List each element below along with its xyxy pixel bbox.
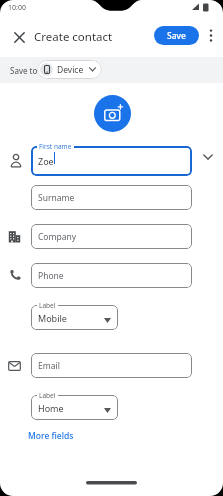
staticText: More fields — [28, 430, 74, 442]
button[interactable]: Device — [37, 60, 102, 79]
staticText: First name — [39, 142, 72, 151]
staticText: Company — [38, 231, 77, 243]
button[interactable] — [199, 148, 217, 166]
button[interactable] — [94, 95, 131, 132]
button[interactable]: Zoe — [31, 146, 192, 176]
button[interactable]: More fields — [26, 428, 76, 444]
staticText: Create contact — [34, 29, 113, 45]
staticText: Mobile — [38, 312, 67, 324]
button[interactable] — [9, 27, 29, 47]
button[interactable]: Home — [31, 395, 118, 420]
button[interactable]: Email — [31, 353, 192, 378]
staticText: Save to — [10, 65, 38, 76]
button[interactable]: Surname — [31, 185, 192, 210]
staticText: 10:00 — [8, 3, 26, 13]
button[interactable]: Phone — [31, 263, 192, 288]
button[interactable] — [203, 26, 218, 45]
button[interactable]: Company — [31, 224, 192, 249]
staticText: Save — [167, 30, 186, 42]
staticText: Label — [39, 391, 56, 400]
staticText: Email — [38, 360, 60, 372]
staticText: Label — [39, 301, 56, 310]
staticText: Zoe — [38, 155, 54, 167]
staticText: Surname — [38, 192, 75, 204]
button[interactable]: Save — [154, 26, 199, 45]
staticText: Home — [38, 402, 64, 414]
staticText: Phone — [38, 270, 64, 282]
button[interactable]: Mobile — [31, 305, 118, 330]
staticText: Device — [57, 64, 84, 76]
